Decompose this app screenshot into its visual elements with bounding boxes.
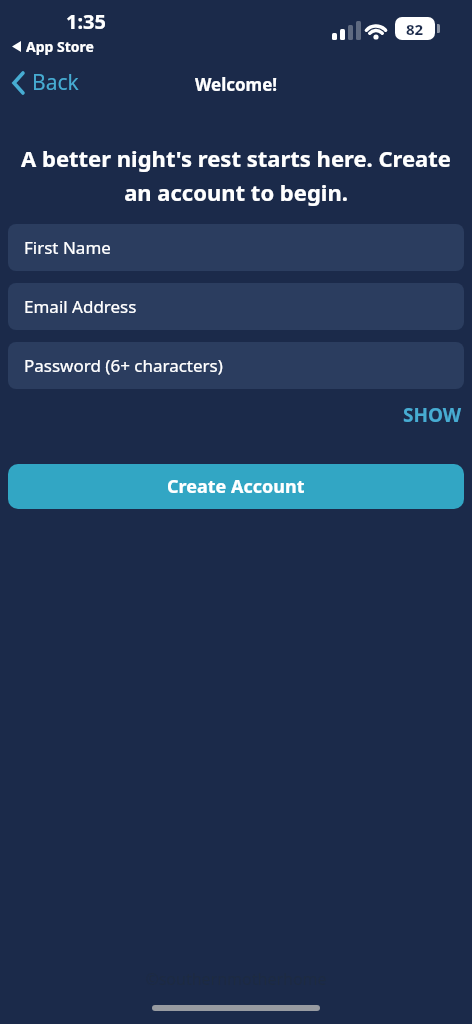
- button[interactable]: Email Address: [8, 283, 464, 330]
- button[interactable]: App Store: [12, 37, 94, 56]
- staticText: 82: [406, 19, 424, 39]
- staticText: Email Address: [24, 295, 137, 318]
- staticText: Welcome!: [0, 73, 472, 96]
- button[interactable]: Password (6+ characters): [8, 342, 464, 389]
- staticText: Create Account: [167, 474, 305, 499]
- staticText: A better night's rest starts here. Creat…: [0, 143, 472, 208]
- staticText: App Store: [26, 37, 94, 56]
- staticText: Password (6+ characters): [24, 354, 223, 377]
- button[interactable]: SHOW: [403, 402, 462, 428]
- staticText: First Name: [24, 236, 111, 259]
- staticText: Back: [32, 68, 79, 97]
- button[interactable]: First Name: [8, 224, 464, 271]
- button[interactable]: Create Account: [8, 464, 464, 509]
- button[interactable]: Back: [12, 68, 79, 97]
- staticText: 1:35: [66, 8, 106, 35]
